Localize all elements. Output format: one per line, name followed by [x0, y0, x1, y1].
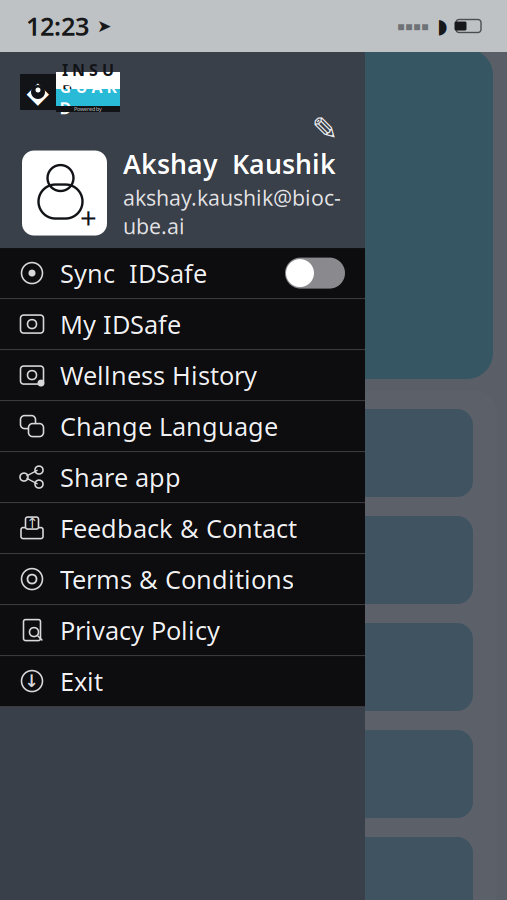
staticText: G U A R D	[59, 76, 116, 119]
staticText: »	[241, 426, 266, 479]
button[interactable]: Sync IDSafe	[0, 248, 365, 299]
staticText: Wellness History	[60, 358, 257, 392]
button[interactable]: ↑	[0, 503, 365, 554]
staticText: ✎	[311, 111, 338, 147]
staticText: ↑	[26, 515, 38, 531]
button[interactable]: Change Language	[0, 401, 365, 452]
staticText: Feedback & Contact	[60, 511, 297, 545]
staticText: ▪▪▪▪	[397, 19, 429, 33]
staticText: My IDSafe	[60, 307, 181, 341]
staticText: Exit	[60, 664, 103, 698]
staticText: akshay.kaushik@biocube.ai	[123, 183, 341, 240]
button[interactable]: Open item	[34, 516, 473, 604]
staticText: Share app	[60, 460, 181, 494]
button[interactable]: Privacy Policy	[0, 605, 365, 656]
staticText: ◗	[437, 15, 448, 37]
staticText: Powered by	[74, 105, 102, 113]
staticText: ◆	[26, 75, 49, 109]
staticText: 12:23	[26, 9, 89, 43]
staticText: Privacy Policy	[60, 613, 220, 647]
staticText: ↓	[24, 671, 39, 691]
button[interactable]: Terms & Conditions	[0, 554, 365, 605]
staticText: ➤	[97, 16, 112, 36]
button[interactable]: Wellness History	[0, 350, 365, 401]
staticText: Terms & Conditions	[60, 562, 294, 596]
staticText: Change Language	[60, 409, 278, 443]
button[interactable]: Share app	[0, 452, 365, 503]
staticText: Sync IDSafe	[60, 256, 207, 290]
staticText: »	[241, 640, 266, 693]
button[interactable]: My IDSafe	[0, 299, 365, 350]
staticText: »	[241, 533, 266, 586]
staticText: I N S U R	[62, 59, 114, 102]
button[interactable]: Edit profile	[307, 114, 343, 144]
button[interactable]: Open item	[34, 730, 473, 818]
staticText: +	[80, 198, 97, 237]
button[interactable]: Open item	[34, 837, 473, 900]
button[interactable]: Open item	[34, 409, 473, 497]
button[interactable]: ↓	[0, 656, 365, 707]
staticText: Akshay Kaushik	[123, 146, 336, 181]
button[interactable]: Open item	[34, 623, 473, 711]
